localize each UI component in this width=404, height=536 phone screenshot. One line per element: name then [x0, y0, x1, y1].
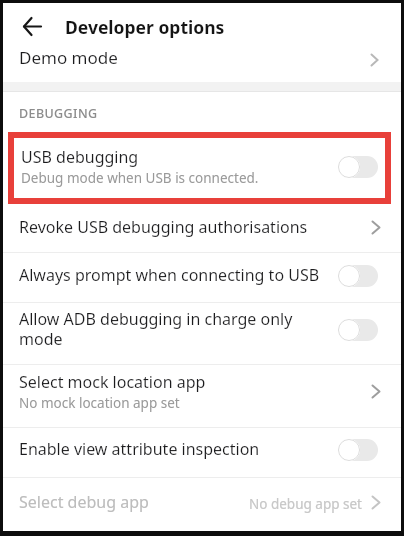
- staticText: USB debugging: [21, 146, 139, 168]
- button[interactable]: Demo mode: [3, 44, 401, 82]
- staticText: Debug mode when USB is connected.: [21, 169, 259, 187]
- button[interactable]: USB debugging: [8, 132, 391, 204]
- button[interactable]: [338, 439, 378, 461]
- button[interactable]: Select debug app: [3, 477, 401, 531]
- staticText: Select debug app: [19, 491, 149, 513]
- button[interactable]: Always prompt when connecting to USB: [3, 252, 401, 302]
- staticText: Demo mode: [19, 46, 118, 69]
- staticText: DEBUGGING: [19, 105, 98, 122]
- button[interactable]: [338, 319, 378, 341]
- staticText: Revoke USB debugging authorisations: [19, 216, 308, 238]
- button[interactable]: [338, 156, 378, 178]
- staticText: Always prompt when connecting to USB: [19, 264, 320, 286]
- button[interactable]: [338, 265, 378, 287]
- staticText: Developer options: [65, 15, 225, 39]
- staticText: Enable view attribute inspection: [19, 438, 260, 460]
- button[interactable]: Enable view attribute inspection: [3, 427, 401, 477]
- staticText: Allow ADB debugging in charge only mode: [19, 308, 293, 349]
- staticText: Select mock location app: [19, 371, 206, 393]
- button[interactable]: Allow ADB debugging in charge only mode: [3, 302, 401, 364]
- staticText: No debug app set: [249, 495, 362, 513]
- button[interactable]: Select mock location app: [3, 364, 401, 427]
- staticText: No mock location app set: [19, 394, 180, 412]
- button[interactable]: Revoke USB debugging authorisations: [3, 204, 401, 252]
- button[interactable]: [13, 7, 51, 45]
